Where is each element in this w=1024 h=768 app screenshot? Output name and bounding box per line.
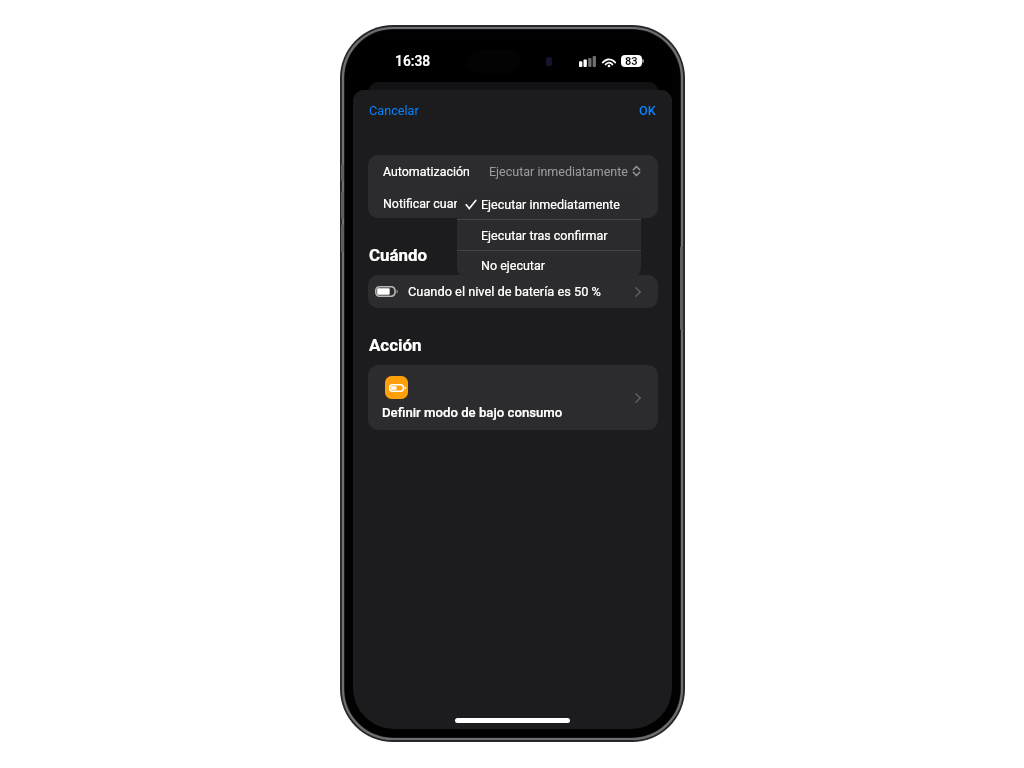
staticText: No ejecutar	[481, 258, 545, 273]
button[interactable]: OK	[612, 95, 664, 125]
staticText: Ejecutar inmediatamente	[481, 197, 620, 212]
button[interactable]: Notificar cuando se ejecute	[368, 187, 658, 218]
staticText: 83	[625, 55, 638, 67]
staticText: Definir modo de bajo consumo	[382, 405, 563, 420]
button[interactable]: No ejecutar	[457, 251, 641, 280]
staticText: 16:38	[395, 53, 431, 69]
button[interactable]: Definir modo de bajo consumo	[368, 365, 658, 430]
staticText: Cuando el nivel de batería es 50 %	[408, 284, 601, 299]
button[interactable]: Ejecutar tras confirmar	[457, 220, 641, 250]
button[interactable]: Automatización	[368, 155, 658, 187]
button[interactable]: Ejecutar inmediatamente	[457, 189, 641, 219]
button[interactable]: Cancelar	[361, 95, 431, 125]
staticText: Notificar cuando se ejecute	[383, 196, 534, 211]
staticText: Automatización	[383, 164, 470, 179]
staticText: Ejecutar tras confirmar	[481, 228, 608, 243]
button[interactable]: Cuando el nivel de batería es 50 %	[368, 275, 658, 308]
staticText: Acción	[369, 335, 422, 355]
staticText: Cancelar	[369, 103, 419, 118]
staticText: OK	[639, 103, 656, 118]
staticText: Cuándo	[369, 245, 428, 265]
staticText: Ejecutar inmediatamente	[489, 164, 628, 179]
